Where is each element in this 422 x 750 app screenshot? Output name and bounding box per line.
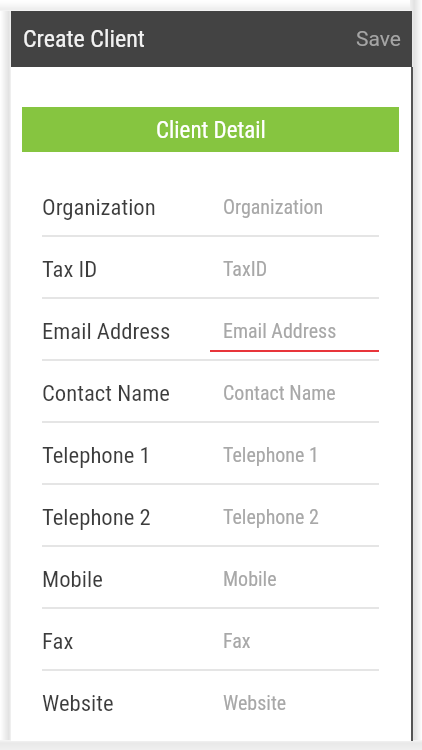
staticText: Organization: [223, 195, 324, 218]
staticText: Create Client: [23, 25, 145, 53]
staticText: Save: [356, 27, 401, 52]
staticText: Contact Name: [223, 381, 336, 404]
button[interactable]: Contact Name: [11, 361, 412, 423]
staticText: Email Address: [223, 319, 337, 342]
button[interactable]: Fax: [11, 609, 412, 671]
staticText: Telephone 1: [223, 443, 319, 466]
staticText: Telephone 2: [223, 505, 319, 528]
staticText: Telephone 1: [42, 442, 151, 469]
staticText: Organization: [42, 194, 156, 221]
staticText: TaxID: [223, 257, 268, 280]
button[interactable]: Mobile: [11, 547, 412, 609]
staticText: Client Detail: [156, 117, 266, 144]
button[interactable]: Email Address: [11, 299, 412, 361]
staticText: Mobile: [42, 566, 103, 593]
staticText: Telephone 2: [42, 504, 151, 531]
staticText: Mobile: [223, 567, 277, 590]
button[interactable]: Client Detail: [22, 107, 399, 152]
button[interactable]: Save: [345, 15, 412, 64]
button[interactable]: Tax ID: [11, 237, 412, 299]
button[interactable]: Organization: [11, 175, 412, 237]
staticText: Contact Name: [42, 380, 170, 407]
staticText: Website: [42, 690, 114, 717]
button[interactable]: Telephone 2: [11, 485, 412, 547]
staticText: Fax: [42, 628, 74, 655]
staticText: Fax: [223, 629, 251, 652]
staticText: Tax ID: [42, 256, 98, 283]
button[interactable]: Telephone 1: [11, 423, 412, 485]
button[interactable]: Website: [11, 671, 412, 733]
staticText: Email Address: [42, 318, 171, 345]
staticText: Website: [223, 691, 287, 714]
